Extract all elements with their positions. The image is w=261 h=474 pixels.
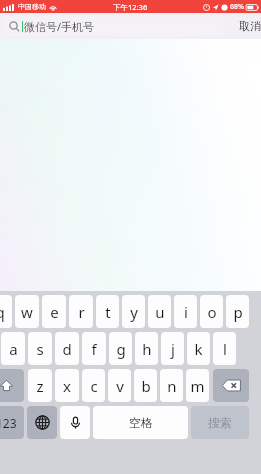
button[interactable]: a <box>1 332 25 365</box>
staticText: e <box>50 302 59 322</box>
staticText: d <box>62 339 72 359</box>
staticText: c <box>90 376 98 396</box>
staticText: s <box>36 339 44 359</box>
staticText: l <box>223 339 227 359</box>
staticText: p <box>233 302 243 322</box>
button[interactable]: g <box>109 332 132 365</box>
button[interactable]: m <box>186 369 209 402</box>
staticText: a <box>9 339 18 359</box>
staticText: r <box>78 302 85 322</box>
staticText: 123 <box>0 415 17 431</box>
button[interactable]: c <box>82 369 105 402</box>
button[interactable]: Switch keyboard language <box>27 406 57 439</box>
staticText: o <box>207 302 217 322</box>
staticText: j <box>171 339 175 359</box>
staticText: u <box>155 302 165 322</box>
staticText: q <box>0 302 5 322</box>
staticText: 搜索 <box>208 415 232 430</box>
button[interactable]: j <box>161 332 184 365</box>
button[interactable]: 取消 <box>227 13 261 39</box>
staticText: t <box>105 302 111 322</box>
staticText: 取消 <box>239 19 261 33</box>
staticText: 空格 <box>129 415 153 430</box>
button[interactable]: r <box>69 295 93 328</box>
staticText: x <box>63 376 71 396</box>
staticText: y <box>130 302 138 322</box>
button[interactable]: w <box>15 295 39 328</box>
button[interactable]: y <box>122 295 145 328</box>
button[interactable]: z <box>28 369 52 402</box>
button[interactable]: s <box>28 332 52 365</box>
button[interactable]: p <box>226 295 249 328</box>
button[interactable]: Voice input <box>60 406 90 439</box>
staticText: 中国移动 <box>18 2 46 11</box>
button[interactable]: q <box>0 295 12 328</box>
staticText: z <box>36 376 44 396</box>
staticText: n <box>167 376 177 396</box>
button[interactable]: 微信号/手机号 <box>4 17 223 36</box>
button[interactable]: Delete <box>213 369 249 402</box>
staticText: 下午12:36 <box>113 2 148 12</box>
staticText: f <box>91 339 97 359</box>
button[interactable]: 123 <box>0 406 24 439</box>
staticText: 微信号/手机号 <box>24 19 95 34</box>
button[interactable]: d <box>55 332 79 365</box>
button[interactable]: n <box>160 369 183 402</box>
button[interactable]: u <box>148 295 171 328</box>
button[interactable]: v <box>108 369 131 402</box>
staticText: k <box>194 339 203 359</box>
button[interactable]: h <box>135 332 158 365</box>
staticText: i <box>184 302 188 322</box>
button[interactable]: o <box>200 295 223 328</box>
staticText: h <box>142 339 152 359</box>
button[interactable]: i <box>174 295 197 328</box>
button[interactable]: f <box>82 332 106 365</box>
button[interactable]: e <box>42 295 66 328</box>
button[interactable]: 空格 <box>93 406 188 439</box>
staticText: g <box>116 339 126 359</box>
button[interactable]: x <box>55 369 79 402</box>
button[interactable]: l <box>213 332 236 365</box>
button[interactable]: b <box>134 369 157 402</box>
staticText: b <box>141 376 151 396</box>
staticText: v <box>116 376 124 396</box>
button[interactable]: 搜索 <box>191 406 249 439</box>
button[interactable]: Shift <box>0 369 24 402</box>
button[interactable]: k <box>187 332 210 365</box>
staticText: m <box>190 376 205 396</box>
staticText: 68% <box>230 2 244 12</box>
button[interactable]: t <box>96 295 119 328</box>
staticText: w <box>21 302 33 322</box>
